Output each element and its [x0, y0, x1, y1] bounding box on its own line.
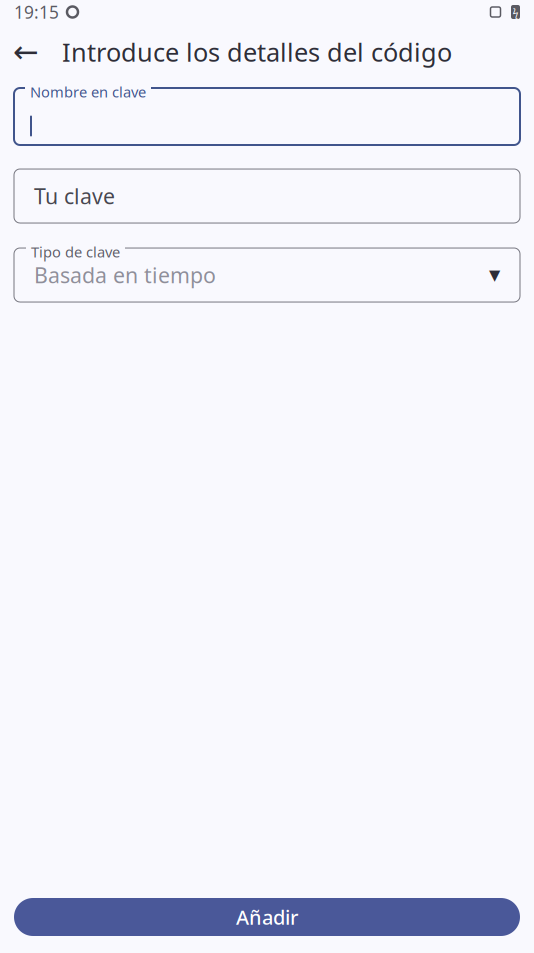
- staticText: Añadir: [236, 904, 298, 930]
- button[interactable]: Añadir: [14, 898, 520, 936]
- staticText: Basada en tiempo: [34, 261, 216, 289]
- staticText: Tipo de clave: [31, 242, 120, 261]
- staticText: 19:15: [14, 0, 59, 23]
- button[interactable]: Atrás: [4, 30, 48, 74]
- staticText: ←: [13, 35, 39, 69]
- button[interactable]: Basada en tiempo: [14, 248, 520, 302]
- button[interactable]: Nombre en clave: [14, 88, 520, 145]
- staticText: ▼: [489, 267, 500, 283]
- staticText: Nombre en clave: [30, 82, 146, 101]
- staticText: Introduce los detalles del código: [62, 35, 452, 69]
- staticText: Tu clave: [34, 182, 115, 210]
- button[interactable]: Tu clave: [14, 169, 520, 223]
- staticText: ϟ: [512, 5, 518, 19]
